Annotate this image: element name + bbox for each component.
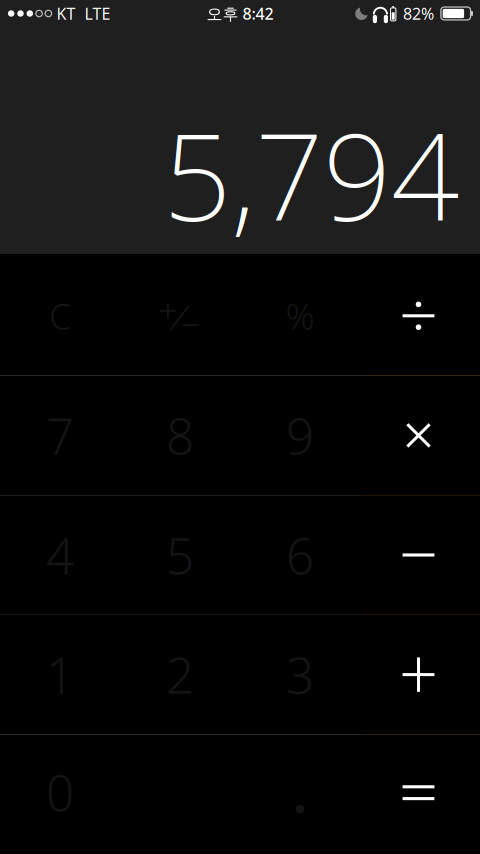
button[interactable]: Zero	[0, 734, 240, 854]
button[interactable]: Divide	[360, 256, 480, 376]
staticText: 오후 8:42	[206, 3, 273, 24]
staticText: 1	[46, 642, 74, 707]
staticText: 6	[286, 522, 314, 588]
button[interactable]: Four	[0, 495, 120, 615]
staticText: %	[285, 292, 314, 340]
staticText: 4	[46, 522, 74, 588]
button[interactable]: Multiply	[360, 376, 480, 495]
staticText: 3	[286, 642, 314, 707]
staticText: KT	[57, 3, 76, 24]
staticText: 8	[166, 403, 194, 468]
staticText: LTE	[85, 3, 111, 24]
staticText: 7	[46, 403, 74, 468]
staticText: 2	[166, 642, 194, 707]
staticText: 82%	[403, 3, 434, 24]
button[interactable]: Decimal point	[240, 734, 360, 854]
staticText: 0	[46, 759, 74, 825]
button[interactable]: Five	[120, 495, 240, 615]
button[interactable]: Percent	[240, 256, 360, 376]
button[interactable]: Equals	[360, 734, 480, 854]
button[interactable]: Plus minus	[120, 256, 240, 376]
staticText: 5,794	[163, 95, 459, 254]
button[interactable]: Plus	[360, 615, 480, 734]
staticText: C	[49, 292, 71, 340]
button[interactable]: Six	[240, 495, 360, 615]
staticText: 9	[286, 403, 314, 468]
staticText: 5	[166, 522, 194, 588]
button[interactable]: Minus	[360, 495, 480, 615]
button[interactable]: Clear	[0, 256, 120, 376]
